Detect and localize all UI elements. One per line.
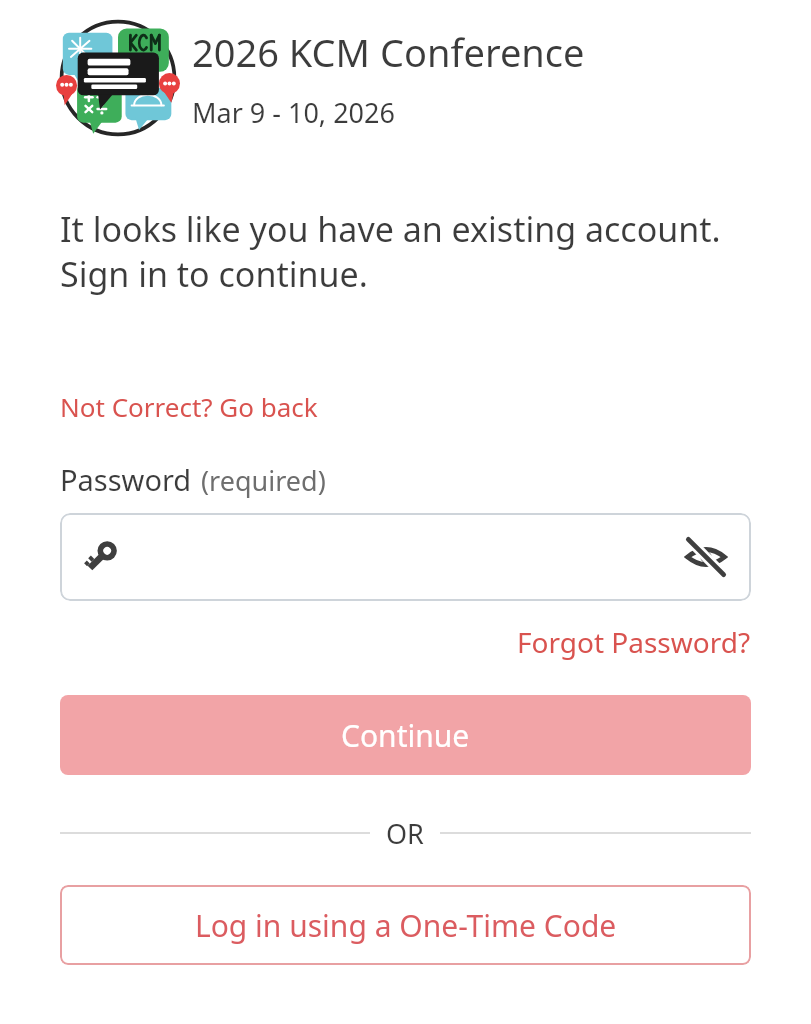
staticText: Not Correct? Go back [60,389,318,424]
button[interactable]: Not Correct? Go back [60,389,318,424]
staticText: Mar 9 - 10, 2026 [192,94,395,131]
button[interactable]: Forgot Password? [517,623,751,661]
staticText: OR [386,815,424,852]
staticText: It looks like you have an existing accou… [60,206,751,297]
staticText: Continue [341,715,470,756]
staticText: Log in using a One-Time Code [195,905,617,946]
button[interactable]: Continue [60,695,751,775]
button[interactable]: Show password [60,513,751,601]
button[interactable]: Log in using a One-Time Code [60,885,751,965]
staticText: Password [60,460,192,499]
staticText: 2026 KCM Conference [192,26,585,78]
staticText: Forgot Password? [517,623,751,661]
staticText: (required) [201,462,326,499]
button[interactable]: Show password [683,534,729,580]
